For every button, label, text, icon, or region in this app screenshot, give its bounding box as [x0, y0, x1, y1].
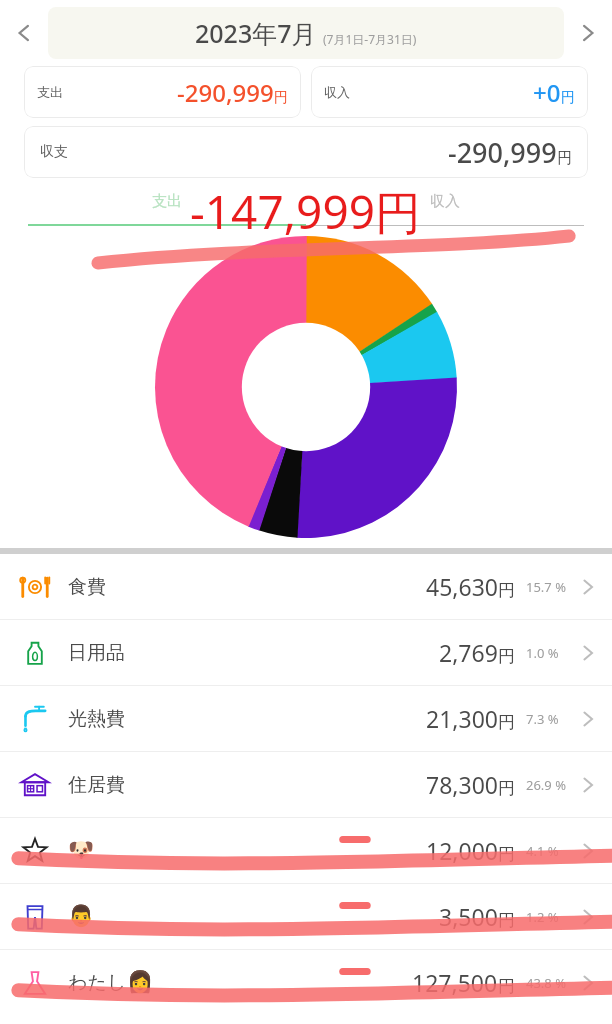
staticText: 15.7 %	[526, 578, 572, 596]
staticText: 円	[498, 712, 515, 733]
button[interactable]: 支出	[24, 66, 301, 118]
button[interactable]: 支出	[28, 192, 306, 226]
staticText: 円	[498, 580, 515, 601]
button[interactable]: 食費	[0, 554, 612, 619]
button[interactable]: 住居費	[0, 752, 612, 817]
staticText: -290,999	[177, 76, 274, 109]
staticText: -290,999	[448, 134, 557, 171]
staticText: 1.2 %	[526, 908, 572, 926]
staticText: 円	[498, 844, 515, 865]
staticText: +0	[533, 76, 561, 109]
staticText: 収支	[40, 143, 68, 161]
staticText: 食費	[68, 575, 106, 599]
staticText: 3,500	[439, 901, 498, 932]
staticText: (7月1日-7月31日)	[323, 31, 417, 47]
staticText: 住居費	[68, 773, 125, 797]
staticText: -147,999円	[190, 180, 422, 243]
staticText: 円	[557, 149, 572, 168]
staticText: 45,630	[426, 571, 498, 602]
button[interactable]: 収入	[306, 192, 584, 226]
staticText: 127,500	[412, 967, 498, 998]
staticText: 7.3 %	[526, 710, 572, 728]
staticText: 👨	[68, 904, 95, 929]
staticText: 12,000	[426, 835, 498, 866]
staticText: 2,769	[439, 637, 498, 668]
staticText: 光熱費	[68, 707, 125, 731]
staticText: 収入	[430, 192, 460, 211]
button[interactable]: 次の月	[564, 9, 612, 57]
staticText: 2023年7月	[195, 16, 317, 50]
button[interactable]: 前の月	[0, 9, 48, 57]
staticText: わたし	[68, 971, 127, 995]
staticText: 78,300	[426, 769, 498, 800]
staticText: 円	[498, 910, 515, 931]
button[interactable]: 2023年7月	[48, 7, 564, 59]
button[interactable]: 👨	[0, 884, 612, 949]
staticText: 1.0 %	[526, 644, 572, 662]
staticText: 4.1 %	[526, 842, 572, 860]
staticText: 日用品	[68, 641, 125, 665]
button[interactable]: 🐶	[0, 818, 612, 883]
button[interactable]: わたし	[0, 950, 612, 1015]
button[interactable]: 光熱費	[0, 686, 612, 751]
staticText: 21,300	[426, 703, 498, 734]
staticText: 円	[274, 89, 288, 107]
button[interactable]: 日用品	[0, 620, 612, 685]
staticText: 円	[498, 976, 515, 997]
staticText: 支出	[152, 192, 182, 211]
staticText: 👩	[127, 970, 154, 995]
staticText: 円	[498, 646, 515, 667]
staticText: 🐶	[68, 838, 95, 863]
staticText: 円	[498, 778, 515, 799]
button[interactable]: 収支	[24, 126, 588, 178]
staticText: 支出	[37, 84, 63, 100]
staticText: 26.9 %	[526, 776, 572, 794]
button[interactable]: 収入	[311, 66, 588, 118]
staticText: 円	[561, 89, 575, 107]
staticText: 43.8 %	[526, 974, 572, 992]
staticText: 収入	[324, 84, 350, 100]
